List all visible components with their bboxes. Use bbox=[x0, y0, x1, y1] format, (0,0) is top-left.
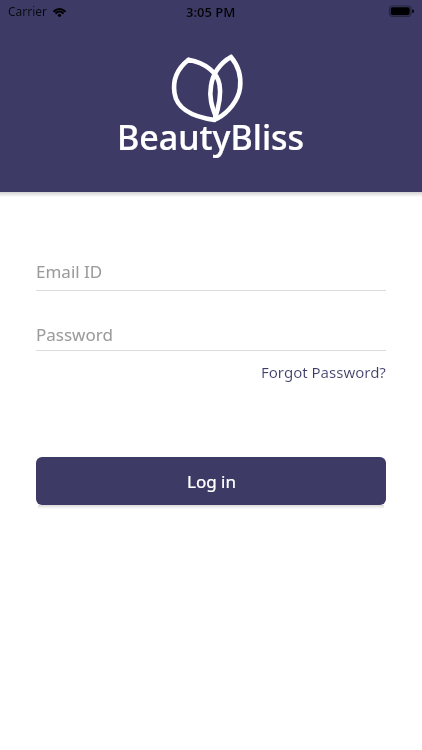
staticText: BeautyBliss bbox=[117, 114, 305, 160]
staticText: 3:05 PM bbox=[186, 3, 236, 21]
staticText: Carrier bbox=[8, 3, 48, 19]
button[interactable]: Log in bbox=[36, 457, 386, 505]
staticText: Email ID bbox=[36, 260, 103, 283]
button[interactable]: Forgot Password? bbox=[261, 362, 386, 382]
staticText: Forgot Password? bbox=[261, 362, 386, 382]
staticText: Log in bbox=[187, 470, 236, 493]
staticText: Password bbox=[36, 323, 113, 346]
